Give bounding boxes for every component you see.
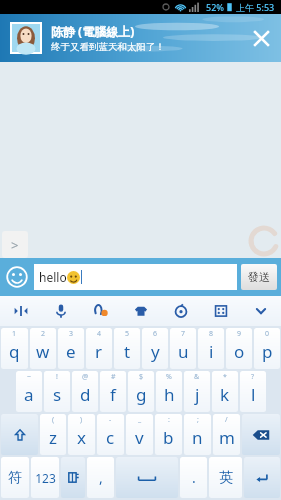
staticText: u bbox=[178, 340, 189, 363]
button[interactable]: ? bbox=[240, 371, 266, 412]
button[interactable]: ( bbox=[40, 414, 66, 455]
button[interactable]: 7 bbox=[170, 328, 196, 369]
button[interactable]: Keypad bbox=[201, 296, 241, 326]
staticText: 符 bbox=[8, 469, 22, 487]
button[interactable]: 0 bbox=[254, 328, 280, 369]
staticText: t bbox=[124, 340, 131, 363]
staticText: e bbox=[66, 340, 76, 363]
staticText: ) bbox=[80, 415, 83, 425]
button[interactable]: ~ bbox=[16, 371, 42, 412]
staticText: 52% bbox=[206, 1, 224, 13]
staticText: j bbox=[195, 383, 200, 406]
staticText: . bbox=[192, 468, 196, 487]
button[interactable]: Shift bbox=[1, 414, 38, 455]
button[interactable]: : bbox=[155, 414, 182, 455]
button[interactable]: 123 bbox=[31, 457, 59, 498]
staticText: > bbox=[11, 236, 19, 254]
staticText: $ bbox=[139, 372, 144, 382]
staticText: 123 bbox=[35, 470, 56, 486]
staticText: l bbox=[251, 383, 256, 406]
staticText: d bbox=[80, 383, 91, 406]
staticText: 终于又看到蓝天和太阳了！ bbox=[51, 41, 165, 53]
staticText: g bbox=[136, 383, 147, 406]
button[interactable]: Emoji bbox=[0, 260, 34, 294]
staticText: n bbox=[192, 426, 203, 449]
staticText: 發送 bbox=[248, 270, 270, 284]
button[interactable]: Close notification bbox=[241, 18, 281, 58]
button[interactable]: _ bbox=[126, 414, 153, 455]
staticText: : bbox=[168, 415, 170, 425]
button[interactable]: Space bbox=[116, 457, 178, 498]
staticText: y bbox=[151, 340, 160, 363]
button[interactable]: 英 bbox=[209, 457, 242, 498]
staticText: , bbox=[99, 468, 103, 487]
staticText: 9 bbox=[237, 329, 242, 339]
staticText: o bbox=[234, 340, 245, 363]
staticText: @ bbox=[82, 372, 89, 382]
button[interactable]: - bbox=[97, 414, 124, 455]
button[interactable]: $ bbox=[128, 371, 154, 412]
button[interactable]: 6 bbox=[142, 328, 168, 369]
staticText: - bbox=[109, 415, 112, 425]
button[interactable]: 1 bbox=[1, 328, 28, 369]
staticText: % bbox=[166, 372, 172, 382]
staticText: q bbox=[9, 340, 20, 363]
button[interactable]: Voice input bbox=[41, 296, 81, 326]
staticText: ( bbox=[52, 415, 55, 425]
button[interactable]: / bbox=[213, 414, 240, 455]
staticText: 英 bbox=[219, 469, 233, 487]
staticText: ~ bbox=[27, 372, 32, 382]
button[interactable]: ) bbox=[68, 414, 95, 455]
staticText: 3 bbox=[69, 329, 74, 339]
staticText: 5 bbox=[125, 329, 130, 339]
button[interactable]: Sticker bbox=[161, 296, 201, 326]
staticText: 8 bbox=[209, 329, 214, 339]
button[interactable]: , bbox=[87, 457, 114, 498]
button[interactable]: Hide keyboard bbox=[241, 296, 281, 326]
button[interactable]: 2 bbox=[30, 328, 56, 369]
button[interactable]: # bbox=[100, 371, 126, 412]
button[interactable]: @ bbox=[72, 371, 98, 412]
button[interactable]: Backspace bbox=[242, 414, 280, 455]
staticText: c bbox=[106, 426, 115, 449]
staticText: s bbox=[53, 383, 62, 406]
staticText: * bbox=[223, 372, 227, 382]
button[interactable]: & bbox=[184, 371, 210, 412]
staticText: i bbox=[209, 340, 214, 363]
staticText: x bbox=[77, 426, 86, 449]
staticText: h bbox=[164, 383, 175, 406]
staticText: 6 bbox=[153, 329, 158, 339]
button[interactable]: Enter bbox=[244, 457, 280, 498]
staticText: 7 bbox=[181, 329, 186, 339]
button[interactable]: Attachment bbox=[81, 296, 121, 326]
button[interactable]: Theme bbox=[121, 296, 161, 326]
button[interactable]: 4 bbox=[86, 328, 112, 369]
staticText: / bbox=[225, 415, 228, 425]
button[interactable]: Expand panel bbox=[2, 231, 28, 258]
staticText: _ bbox=[138, 415, 142, 425]
staticText: k bbox=[220, 383, 230, 406]
staticText: & bbox=[194, 372, 200, 382]
button[interactable]: * bbox=[212, 371, 238, 412]
button[interactable]: ; bbox=[184, 414, 211, 455]
staticText: z bbox=[49, 426, 57, 449]
staticText: ? bbox=[251, 372, 255, 382]
button[interactable]: 5 bbox=[114, 328, 140, 369]
button[interactable]: ! bbox=[44, 371, 70, 412]
staticText: w bbox=[36, 340, 50, 363]
button[interactable]: 符 bbox=[1, 457, 29, 498]
button[interactable]: 9 bbox=[226, 328, 252, 369]
button[interactable]: Cursor bbox=[0, 296, 41, 326]
button[interactable]: 8 bbox=[198, 328, 224, 369]
button[interactable]: 發送 bbox=[241, 264, 277, 290]
button[interactable]: Input method bbox=[61, 457, 85, 498]
staticText: hello bbox=[39, 269, 67, 285]
button[interactable]: 3 bbox=[58, 328, 84, 369]
staticText: ! bbox=[56, 372, 58, 382]
staticText: p bbox=[262, 340, 273, 363]
button[interactable]: % bbox=[156, 371, 182, 412]
staticText: ; bbox=[197, 415, 199, 425]
button[interactable]: . bbox=[180, 457, 207, 498]
button[interactable]: 陈静 (電腦線上) bbox=[0, 14, 281, 62]
button[interactable]: hello bbox=[34, 264, 237, 290]
